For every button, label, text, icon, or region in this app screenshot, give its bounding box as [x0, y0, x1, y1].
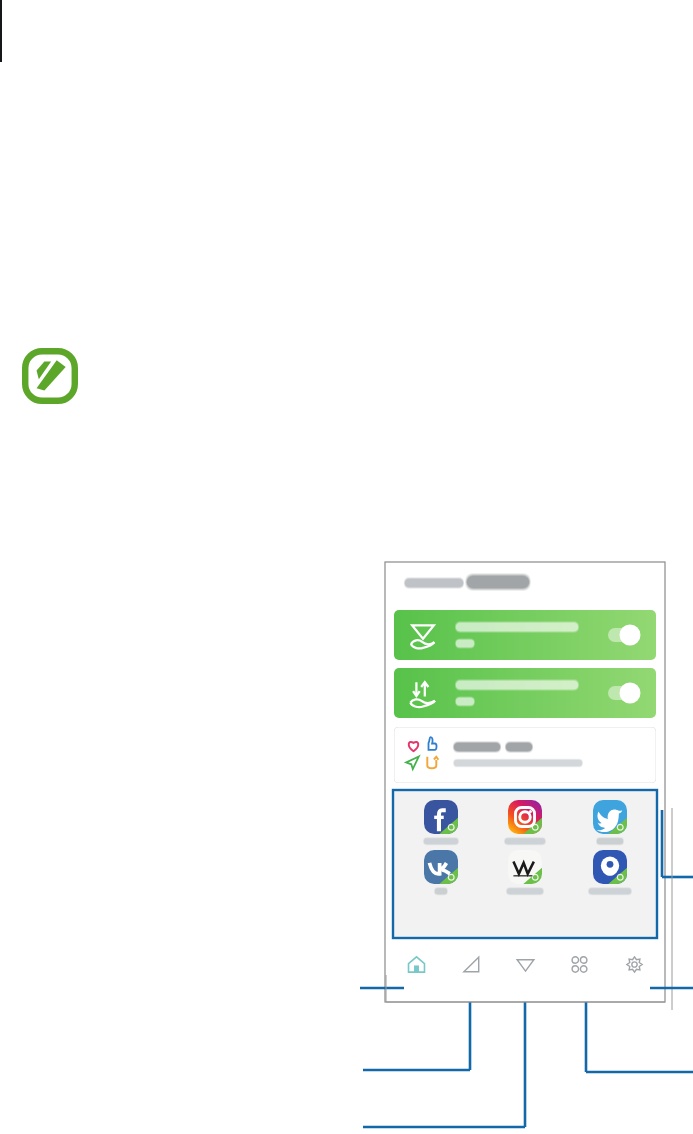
button[interactable]	[488, 850, 562, 896]
button[interactable]: Signal	[448, 947, 494, 981]
button[interactable]	[404, 850, 478, 896]
button[interactable]	[394, 727, 656, 783]
button[interactable]	[573, 800, 647, 846]
button[interactable]	[394, 610, 656, 660]
button[interactable]: Settings	[611, 947, 657, 981]
button[interactable]	[404, 800, 478, 846]
button[interactable]	[394, 668, 656, 718]
button[interactable]: Apps	[556, 947, 602, 981]
button[interactable]	[488, 800, 562, 846]
button[interactable]: Home	[393, 947, 439, 981]
button[interactable]: Wi-Fi	[502, 947, 548, 981]
button[interactable]	[573, 850, 647, 896]
